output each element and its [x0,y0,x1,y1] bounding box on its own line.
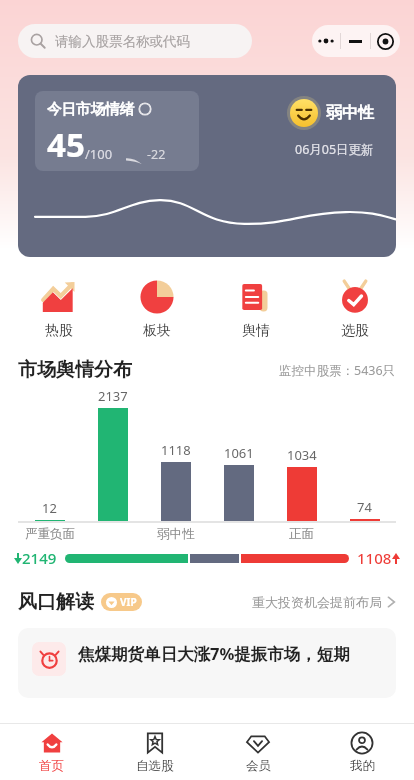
staticText: 06月05日更新 [295,141,374,158]
button[interactable]: Close [371,25,400,57]
staticText: 热股 [45,322,73,340]
button[interactable]: Minimize [341,25,370,57]
button[interactable]: 选股 [305,275,404,344]
staticText: 74 [357,498,372,516]
button[interactable]: 焦煤期货单日大涨7%提振市场，短期 [18,628,396,698]
button[interactable]: 重大投资机会提前布局 [252,594,396,610]
staticText: -22 [147,146,166,163]
staticText: 焦煤期货单日大涨7%提振市场，短期 [78,642,350,665]
staticText: 风口解读 [18,590,94,614]
staticText: /100 [85,145,113,163]
staticText: 监控中股票：5436只 [279,362,396,379]
staticText: 弱中性 [326,103,374,123]
staticText: 1108 [357,548,392,568]
staticText: 弱中性 [157,526,195,542]
staticText: 严重负面 [25,526,75,542]
button[interactable]: 我的 [310,724,414,780]
button[interactable]: More [312,25,340,57]
staticText: 45 [47,122,85,167]
staticText: 板块 [143,322,171,340]
staticText: VIP [120,595,137,609]
staticText: 市场舆情分布 [18,358,132,382]
staticText: 重大投资机会提前布局 [252,594,382,610]
staticText: 舆情 [242,322,270,340]
staticText: 自选股 [136,758,174,774]
button[interactable]: 首页 [0,724,103,780]
staticText: 1034 [287,446,317,464]
staticText: 今日市场情绪 [47,100,134,118]
staticText: 首页 [39,758,64,774]
staticText: 2149 [22,548,57,568]
button[interactable]: 热股 [10,275,108,344]
staticText: 我的 [350,758,375,774]
staticText: 请输入股票名称或代码 [55,33,190,50]
button[interactable]: 板块 [108,275,206,344]
button[interactable]: 会员 [206,724,310,780]
staticText: 1061 [224,444,254,462]
staticText: 正面 [289,526,314,542]
button[interactable]: 自选股 [103,724,206,780]
button[interactable]: 今日市场情绪 [18,75,396,257]
staticText: 选股 [341,322,369,340]
button[interactable]: 舆情 [206,275,305,344]
button[interactable]: 请输入股票名称或代码 [18,24,252,58]
staticText: 会员 [246,758,271,774]
staticText: 2137 [98,387,128,405]
staticText: 12 [42,499,57,517]
staticText: 1118 [161,441,191,459]
